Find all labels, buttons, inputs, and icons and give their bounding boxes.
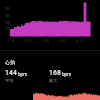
- staticText: 5:25: [24, 39, 31, 43]
- staticText: 160: [4, 14, 11, 18]
- staticText: 120: [4, 27, 11, 31]
- staticText: 6:10: [76, 39, 83, 43]
- staticText: 168: [49, 68, 61, 77]
- button[interactable]: 心拍: [0, 53, 100, 89]
- staticText: 5:40: [42, 39, 49, 43]
- staticText: 平均: [5, 78, 14, 83]
- staticText: 5:55: [59, 39, 66, 43]
- staticText: 5:10: [7, 39, 14, 43]
- staticText: 144: [5, 68, 17, 77]
- staticText: 最大: [49, 78, 58, 83]
- staticText: bpm: [18, 72, 28, 77]
- staticText: bpm: [62, 72, 72, 77]
- staticText: 心拍: [5, 59, 15, 65]
- staticText: 180: [4, 7, 11, 11]
- staticText: 140: [4, 21, 11, 25]
